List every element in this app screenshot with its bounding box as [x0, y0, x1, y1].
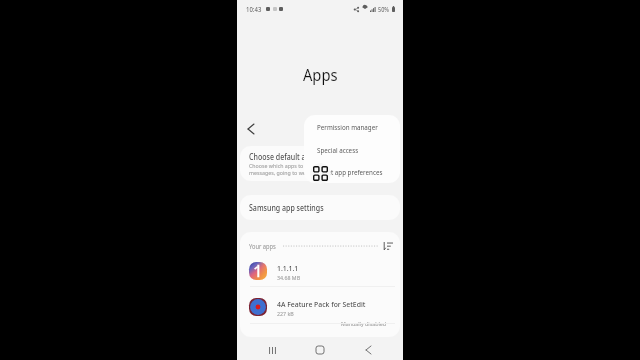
button[interactable]: Back — [240, 118, 262, 140]
staticText: Permission manager — [317, 122, 379, 132]
staticText: 1.1.1.1 — [277, 263, 299, 274]
staticText: Choose which apps to use for sending mes… — [249, 162, 348, 177]
staticText: Reset app preferences — [317, 167, 383, 177]
staticText: 34.68 MB — [277, 274, 301, 282]
button[interactable]: Sort order — [382, 240, 394, 252]
button[interactable]: Samsung app settings — [240, 195, 400, 220]
button[interactable]: 4A Feature Pack for SetEdit — [240, 287, 400, 323]
staticText: Apps — [303, 64, 338, 85]
button[interactable]: 1.1.1.1 — [240, 260, 400, 286]
button[interactable]: Reset app preferences — [304, 161, 400, 183]
staticText: Choose default apps — [249, 151, 318, 162]
staticText: Samsung app settings — [249, 202, 324, 213]
staticText: Your apps — [249, 242, 276, 251]
button[interactable]: Special access — [304, 138, 400, 161]
staticText: Special access — [317, 145, 358, 155]
staticText: 50% — [378, 5, 389, 14]
button[interactable]: Recent apps — [263, 341, 281, 359]
staticText: 10:43 — [246, 5, 262, 14]
button[interactable]: Back — [359, 341, 377, 359]
staticText: 227 kB — [277, 310, 294, 318]
staticText: Manually disabled — [341, 320, 387, 328]
button[interactable]: Home — [311, 341, 329, 359]
button[interactable]: Permission manager — [304, 115, 400, 138]
button[interactable]: Choose default apps — [240, 146, 400, 181]
button[interactable]: 9.9.9.9 Secure — [240, 324, 400, 337]
staticText: 4A Feature Pack for SetEdit — [277, 299, 366, 310]
